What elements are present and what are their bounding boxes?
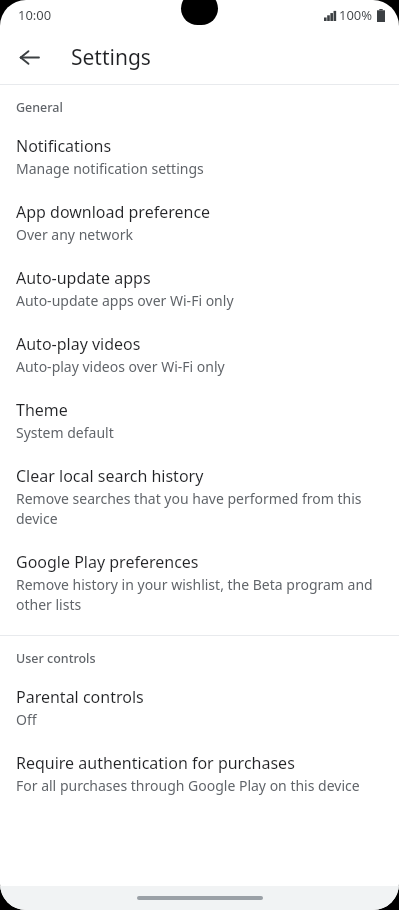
staticText: Manage notification settings — [16, 159, 204, 178]
button[interactable]: Require authentication for purchases — [0, 741, 399, 807]
button[interactable]: Back — [10, 38, 48, 76]
staticText: Settings — [71, 43, 151, 72]
staticText: Off — [16, 710, 37, 729]
button[interactable]: Clear local search history — [0, 454, 399, 540]
staticText: 10:00 — [18, 6, 52, 24]
button[interactable]: Google Play preferences — [0, 540, 399, 626]
staticText: Auto-play videos — [16, 333, 141, 355]
staticText: Auto-update apps — [16, 267, 151, 289]
staticText: Auto-update apps over Wi-Fi only — [16, 291, 234, 310]
staticText: Theme — [16, 399, 68, 421]
staticText: Notifications — [16, 135, 112, 157]
staticText: Over any network — [16, 225, 133, 244]
staticText: Auto-play videos over Wi-Fi only — [16, 357, 225, 376]
staticText: Clear local search history — [16, 465, 204, 487]
button[interactable]: Auto-update apps — [0, 256, 399, 322]
staticText: Parental controls — [16, 686, 144, 708]
staticText: System default — [16, 423, 114, 442]
button[interactable]: Parental controls — [0, 675, 399, 741]
staticText: For all purchases through Google Play on… — [16, 776, 360, 795]
staticText: App download preference — [16, 201, 211, 223]
button[interactable]: App download preference — [0, 190, 399, 256]
button[interactable]: Auto-play videos — [0, 322, 399, 388]
staticText: User controls — [16, 650, 96, 667]
staticText: Google Play preferences — [16, 551, 199, 573]
button[interactable]: Theme — [0, 388, 399, 454]
staticText: Require authentication for purchases — [16, 752, 295, 774]
staticText: General — [16, 99, 63, 116]
staticText: 100% — [339, 6, 373, 24]
staticText: Remove history in your wishlist, the Bet… — [16, 575, 373, 614]
button[interactable]: Notifications — [0, 124, 399, 190]
staticText: Remove searches that you have performed … — [16, 489, 373, 528]
